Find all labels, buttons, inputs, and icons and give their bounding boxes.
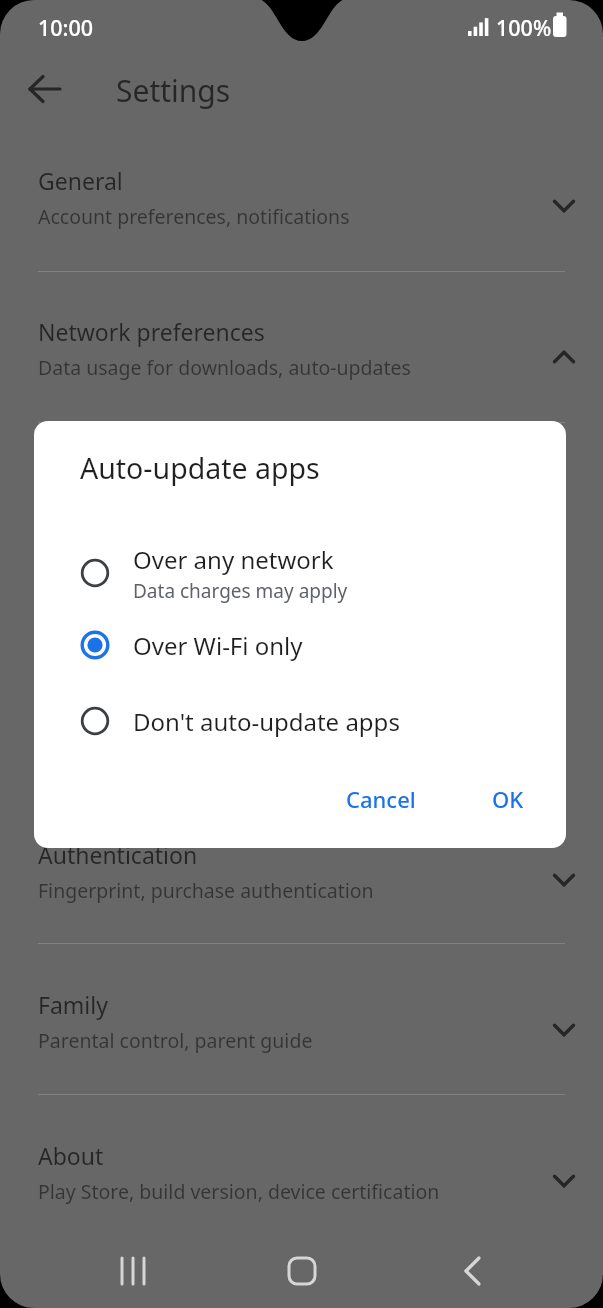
staticText: Settings [116, 70, 231, 111]
staticText: Auto-update apps [80, 449, 320, 488]
staticText: OK [492, 784, 524, 814]
staticText: 100% [496, 13, 552, 42]
staticText: Parental control, parent guide [38, 1027, 313, 1054]
staticText: Data charges may apply [133, 578, 348, 604]
button[interactable]: Back [24, 68, 66, 110]
staticText: Don't auto-update apps [133, 705, 400, 738]
button[interactable]: General [0, 162, 603, 250]
button[interactable]: Authentication [0, 836, 603, 924]
staticText: Authentication [38, 839, 198, 870]
button[interactable]: Cancel [333, 776, 429, 822]
button[interactable]: OK [479, 776, 537, 822]
staticText: Family [38, 989, 108, 1020]
button[interactable]: About [0, 1137, 603, 1225]
staticText: Cancel [346, 784, 416, 814]
button[interactable]: Back [449, 1248, 495, 1294]
staticText: 10:00 [38, 13, 94, 42]
button[interactable]: Recent apps [110, 1248, 156, 1294]
staticText: Fingerprint, purchase authentication [38, 877, 374, 904]
staticText: General [38, 165, 123, 196]
button[interactable]: Don't auto-update apps [34, 696, 566, 746]
button[interactable]: Network preferences [0, 313, 603, 401]
staticText: Play Store, build version, device certif… [38, 1178, 440, 1205]
button[interactable]: Over Wi-Fi only [34, 620, 566, 670]
staticText: Over any network [133, 543, 334, 576]
staticText: Data usage for downloads, auto-updates [38, 354, 411, 381]
button[interactable]: Home [279, 1248, 325, 1294]
staticText: Network preferences [38, 316, 265, 347]
staticText: Account preferences, notifications [38, 203, 350, 230]
staticText: About [38, 1140, 104, 1171]
staticText: Over Wi-Fi only [133, 629, 303, 662]
button[interactable]: Over any network [34, 542, 566, 604]
button[interactable]: Family [0, 986, 603, 1074]
